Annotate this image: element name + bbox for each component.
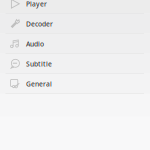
staticText: Subtitle: [26, 59, 52, 68]
staticText: General: [26, 79, 52, 88]
button[interactable]: Audio: [0, 34, 150, 54]
button[interactable]: Player: [0, 0, 150, 14]
button[interactable]: Subtitle: [0, 54, 150, 74]
button[interactable]: General: [0, 74, 150, 94]
staticText: Audio: [26, 39, 44, 48]
button[interactable]: Decoder: [0, 14, 150, 34]
staticText: Decoder: [26, 19, 53, 28]
staticText: Player: [26, 0, 47, 8]
